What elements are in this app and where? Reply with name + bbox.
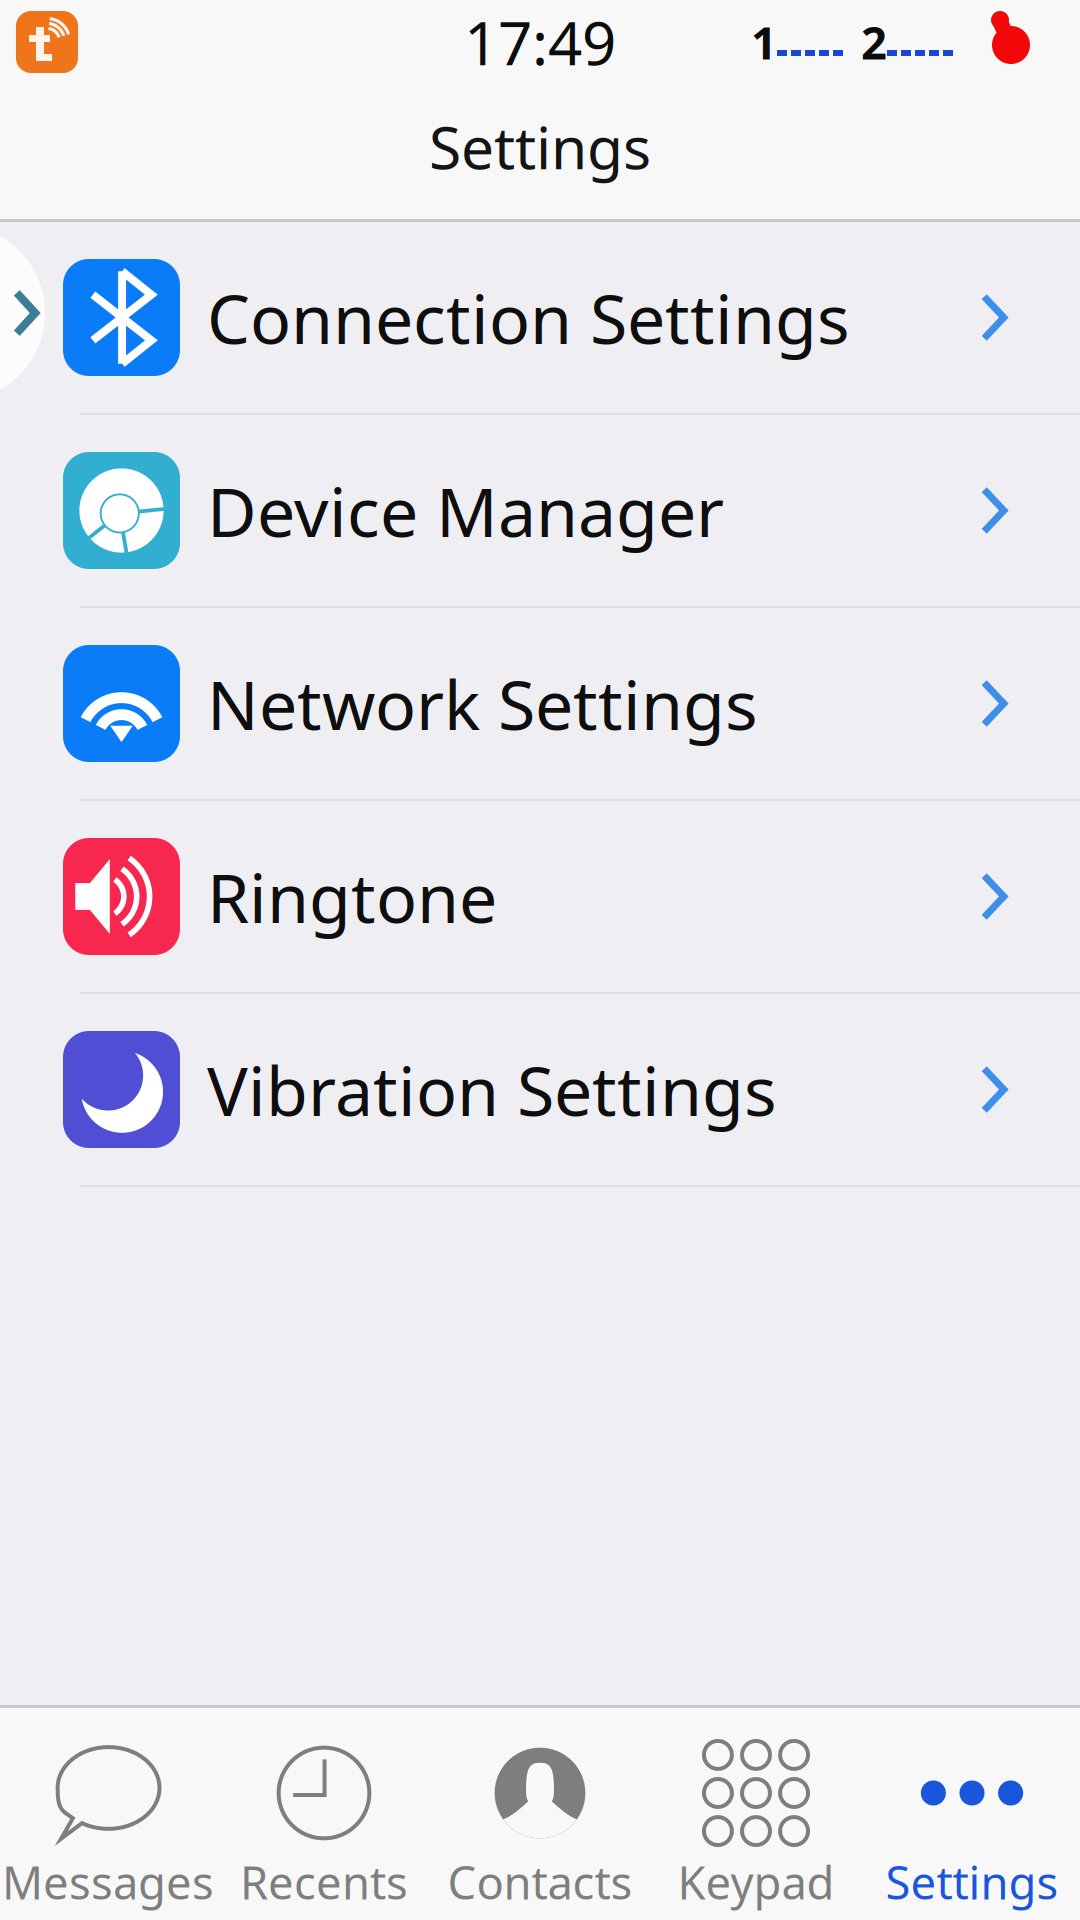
button[interactable]: Vibration Settings [0, 994, 1080, 1187]
button[interactable]: Device Manager [0, 415, 1080, 608]
staticText: Vibration Settings [207, 1044, 777, 1135]
staticText: Ringtone [207, 851, 497, 942]
staticText: Connection Settings [207, 272, 850, 363]
staticText: 17:49 [464, 2, 616, 82]
button[interactable]: Connection Settings [0, 222, 1080, 415]
staticText: Recents [240, 1852, 408, 1912]
button[interactable]: Network Settings [0, 608, 1080, 801]
staticText: 1 [751, 12, 777, 72]
button[interactable]: Recents [216, 1708, 432, 1920]
staticText: Device Manager [207, 465, 724, 556]
staticText: Settings [885, 1852, 1058, 1912]
staticText: Contacts [447, 1852, 632, 1912]
button[interactable]: Settings [864, 1708, 1080, 1920]
staticText: Messages [2, 1852, 214, 1912]
button[interactable]: Back [0, 225, 45, 401]
button[interactable]: Keypad [648, 1708, 864, 1920]
staticText: Keypad [677, 1852, 834, 1912]
staticText: Network Settings [207, 658, 758, 749]
staticText: Settings [429, 107, 651, 185]
button[interactable]: Messages [0, 1708, 216, 1920]
staticText: 2 [861, 12, 887, 72]
button[interactable]: Ringtone [0, 801, 1080, 994]
button[interactable]: Contacts [432, 1708, 648, 1920]
